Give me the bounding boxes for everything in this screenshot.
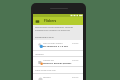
staticText: Transfer left: [43, 59, 54, 62]
staticText: 4:20 AM: [72, 59, 79, 61]
staticText: Instructions moved wherever settings: [35, 26, 73, 29]
button[interactable]: Sync on myfit streams: [33, 40, 83, 50]
staticText: Yesterday: [35, 53, 44, 56]
staticText: Showing your network of branches: [35, 29, 70, 32]
staticText: Wireless devices builder: [43, 61, 72, 64]
staticText: Sessions: [43, 76, 51, 79]
staticText: Connecting to Wi-Fi: [35, 36, 54, 39]
staticText: Flickers: [44, 19, 57, 23]
staticText: BE VERSION 2.1.0 SPK: [43, 44, 69, 47]
staticText: Sync on myfit streams: [43, 42, 63, 45]
button[interactable]: Transfer left: [33, 57, 83, 66]
staticText: Check mode multi-case: [35, 69, 56, 72]
button[interactable]: Open navigation menu: [35, 19, 40, 24]
button[interactable]: Sessions: [33, 74, 83, 80]
staticText: 9:00 AM: [72, 76, 79, 78]
staticText: 2:30 PM: [72, 42, 79, 44]
